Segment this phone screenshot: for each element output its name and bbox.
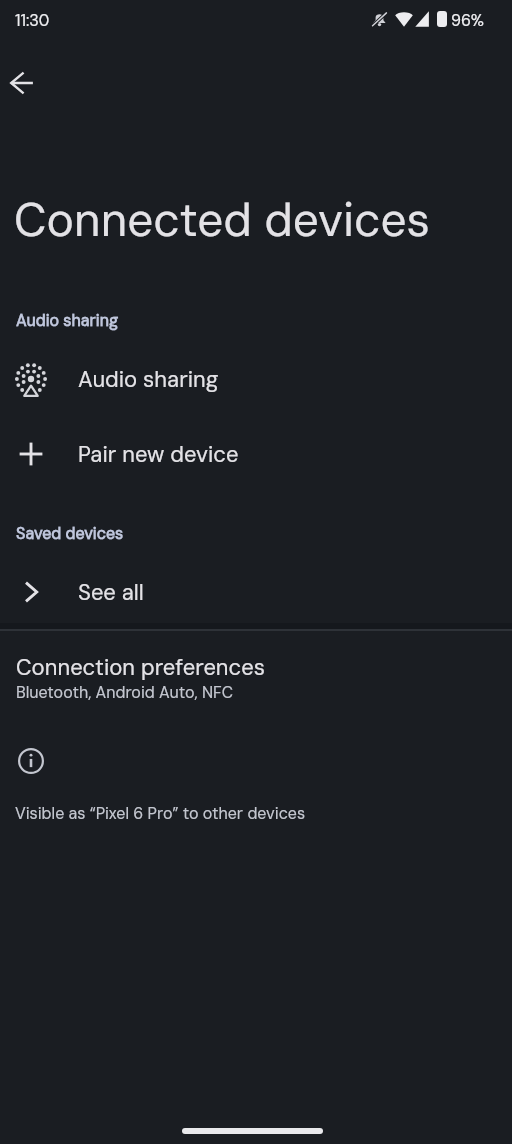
button[interactable]: See all bbox=[0, 564, 512, 620]
staticText: 11:30 bbox=[15, 10, 50, 31]
button[interactable]: Pair new device bbox=[0, 426, 512, 482]
staticText: Visible as “Pixel 6 Pro” to other device… bbox=[15, 803, 306, 824]
button[interactable]: Navigate up bbox=[0, 59, 46, 107]
staticText: Saved devices bbox=[16, 523, 124, 544]
staticText: 96% bbox=[451, 10, 484, 31]
staticText: Audio sharing bbox=[16, 310, 119, 331]
staticText: Connected devices bbox=[14, 190, 430, 250]
button[interactable]: Audio sharing bbox=[0, 351, 512, 407]
staticText: See all bbox=[78, 578, 144, 607]
staticText: Connection preferences bbox=[16, 653, 265, 682]
staticText: Pair new device bbox=[78, 440, 239, 469]
button[interactable]: Connection preferences bbox=[0, 640, 512, 716]
staticText: Audio sharing bbox=[78, 365, 219, 394]
staticText: Bluetooth, Android Auto, NFC bbox=[16, 682, 234, 703]
